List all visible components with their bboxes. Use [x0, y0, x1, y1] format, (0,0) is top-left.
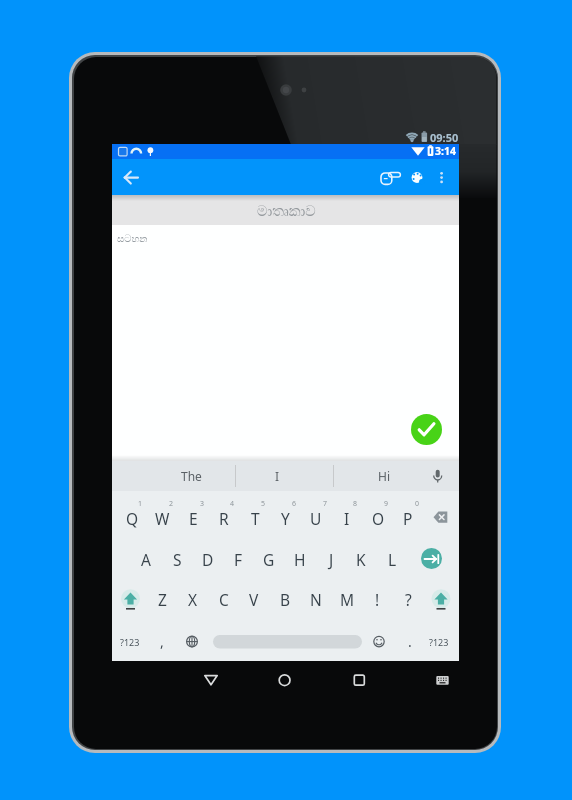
button[interactable] — [425, 579, 457, 619]
staticText: N — [310, 589, 322, 610]
staticText: , — [160, 632, 164, 651]
staticText: The — [181, 468, 202, 484]
button[interactable]: U — [301, 498, 331, 538]
button[interactable]: ?123 — [115, 627, 145, 657]
staticText: Hi — [378, 468, 390, 484]
button[interactable] — [178, 627, 206, 657]
staticText: ?123 — [429, 636, 449, 648]
button[interactable]: D — [193, 539, 223, 579]
button[interactable]: H — [285, 539, 315, 579]
button[interactable] — [270, 666, 300, 695]
staticText: M — [340, 589, 355, 610]
button[interactable]: ! — [362, 579, 392, 619]
staticText: T — [251, 508, 260, 529]
staticText: P — [403, 508, 413, 529]
button[interactable]: P — [393, 498, 423, 538]
button[interactable]: Hi — [344, 461, 424, 491]
button[interactable] — [365, 627, 393, 657]
button[interactable] — [431, 162, 453, 193]
button[interactable]: J — [316, 539, 346, 579]
staticText: D — [202, 549, 214, 570]
button[interactable]: K — [346, 539, 376, 579]
staticText: U — [310, 508, 322, 529]
staticText: Q — [126, 508, 139, 529]
staticText: 1 — [138, 499, 143, 509]
staticText: H — [294, 549, 306, 570]
button[interactable]: L — [377, 539, 407, 579]
button[interactable] — [376, 162, 404, 193]
staticText: S — [173, 549, 182, 570]
staticText: 0 — [415, 499, 420, 509]
button[interactable] — [425, 462, 453, 490]
button[interactable]: N — [301, 579, 331, 619]
button[interactable] — [404, 162, 431, 193]
button[interactable]: , — [152, 626, 172, 656]
button[interactable]: A — [131, 539, 161, 579]
button[interactable] — [112, 195, 459, 225]
button[interactable] — [411, 414, 442, 445]
staticText: 8 — [353, 499, 358, 509]
staticText: 9 — [384, 499, 389, 509]
button[interactable]: The — [151, 461, 231, 491]
staticText: B — [280, 589, 291, 610]
button[interactable] — [421, 548, 442, 569]
staticText: V — [249, 589, 259, 610]
button[interactable] — [112, 225, 459, 461]
button[interactable]: B — [270, 579, 300, 619]
staticText: X — [188, 589, 198, 610]
staticText: Y — [281, 508, 290, 529]
button[interactable]: Y — [270, 498, 300, 538]
staticText: 3 — [200, 499, 205, 509]
staticText: O — [372, 508, 385, 529]
button[interactable]: F — [223, 539, 253, 579]
button[interactable] — [344, 666, 374, 695]
staticText: . — [408, 632, 412, 651]
staticText: F — [234, 549, 243, 570]
staticText: සටහන — [117, 234, 148, 244]
button[interactable] — [425, 498, 457, 538]
button[interactable]: S — [162, 539, 192, 579]
button[interactable]: Z — [147, 579, 177, 619]
button[interactable]: W — [147, 498, 177, 538]
button[interactable]: C — [209, 579, 239, 619]
button[interactable]: ? — [393, 579, 423, 619]
button[interactable]: M — [332, 579, 362, 619]
staticText: K — [356, 549, 366, 570]
staticText: A — [141, 549, 151, 570]
staticText: 7 — [323, 499, 328, 509]
button[interactable]: I — [237, 461, 317, 491]
staticText: 3:14 — [435, 144, 456, 158]
staticText: I — [275, 468, 280, 484]
button[interactable] — [213, 630, 362, 654]
staticText: L — [388, 549, 397, 570]
button[interactable]: V — [239, 579, 269, 619]
button[interactable]: R — [209, 498, 239, 538]
button[interactable] — [428, 666, 458, 695]
staticText: මාතෘකාව — [257, 204, 316, 219]
staticText: 2 — [169, 499, 174, 509]
button[interactable] — [115, 579, 147, 619]
button[interactable]: . — [400, 626, 420, 656]
staticText: 5 — [261, 499, 266, 509]
button[interactable]: X — [178, 579, 208, 619]
button[interactable]: T — [240, 498, 270, 538]
staticText: R — [219, 508, 229, 529]
button[interactable] — [114, 160, 148, 194]
staticText: ?123 — [120, 636, 140, 648]
button[interactable]: Q — [117, 498, 147, 538]
button[interactable]: I — [332, 498, 362, 538]
staticText: 4 — [230, 499, 235, 509]
button[interactable]: O — [363, 498, 393, 538]
staticText: ! — [375, 589, 380, 610]
staticText: J — [329, 549, 334, 570]
button[interactable]: ?123 — [424, 627, 454, 657]
staticText: E — [189, 508, 198, 529]
staticText: 09:50 — [430, 130, 459, 145]
staticText: I — [344, 508, 350, 529]
staticText: 6 — [292, 499, 297, 509]
button[interactable] — [196, 666, 226, 695]
staticText: Z — [158, 589, 167, 610]
staticText: C — [219, 589, 229, 610]
button[interactable]: E — [178, 498, 208, 538]
button[interactable]: G — [254, 539, 284, 579]
